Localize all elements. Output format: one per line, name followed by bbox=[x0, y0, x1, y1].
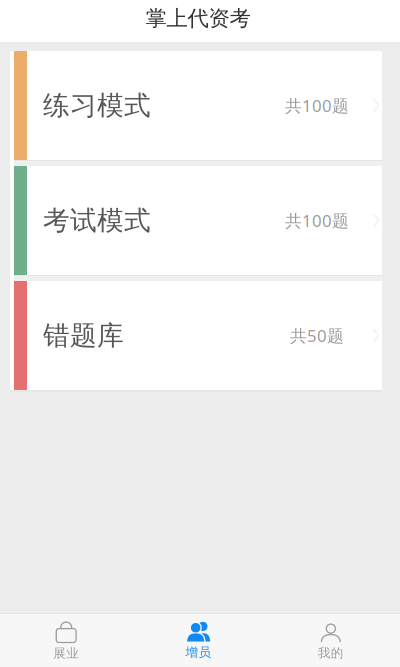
staticText: 展业 bbox=[53, 645, 79, 661]
button[interactable]: 展业 bbox=[0, 614, 132, 667]
staticText: 共100题 bbox=[285, 94, 349, 117]
button[interactable]: 考试模式 bbox=[10, 166, 382, 275]
staticText: 共50题 bbox=[290, 324, 344, 347]
button[interactable]: 增员 bbox=[132, 614, 265, 667]
staticText: 练习模式 bbox=[43, 89, 151, 122]
staticText: 增员 bbox=[185, 644, 211, 660]
staticText: 错题库 bbox=[43, 319, 124, 352]
staticText: 我的 bbox=[318, 645, 344, 661]
button[interactable]: 我的 bbox=[265, 614, 397, 667]
staticText: 共100题 bbox=[285, 209, 349, 232]
button[interactable]: 错题库 bbox=[10, 281, 382, 390]
button[interactable]: 练习模式 bbox=[10, 51, 382, 160]
staticText: 考试模式 bbox=[43, 204, 151, 237]
staticText: 掌上代资考 bbox=[145, 5, 250, 32]
